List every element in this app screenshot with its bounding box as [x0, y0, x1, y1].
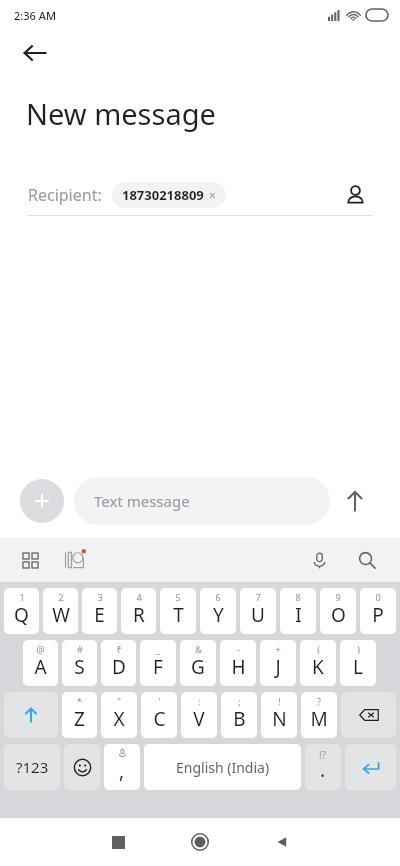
button[interactable]: - — [220, 640, 256, 686]
staticText: I — [295, 602, 302, 628]
staticText: M — [310, 706, 328, 732]
button[interactable]: ? — [301, 692, 337, 738]
staticText: ₹ — [116, 643, 122, 655]
button[interactable]: ! — [261, 692, 297, 738]
button[interactable]: Enter — [345, 744, 396, 790]
button[interactable]: * — [62, 692, 97, 738]
staticText: × — [209, 187, 216, 203]
staticText: 8 — [295, 591, 301, 603]
staticText: X — [113, 706, 125, 732]
staticText: D — [112, 654, 126, 680]
button[interactable]: 4 — [121, 588, 156, 634]
button[interactable]: Send — [330, 476, 380, 526]
staticText: * — [77, 695, 82, 707]
button[interactable]: ?123 — [4, 744, 60, 790]
button[interactable]: Add attachment — [20, 479, 64, 523]
staticText: _ — [156, 643, 160, 655]
button[interactable]: !? — [305, 744, 341, 790]
button[interactable]: Menu — [14, 544, 46, 576]
button[interactable]: 6 — [200, 588, 236, 634]
staticText: V — [193, 706, 205, 732]
button[interactable]: # — [62, 640, 97, 686]
button[interactable]: @ — [23, 640, 58, 686]
button[interactable]: 5 — [160, 588, 196, 634]
button[interactable]: Search — [350, 543, 384, 577]
staticText: ! — [278, 695, 281, 707]
staticText: 9 — [335, 591, 341, 603]
button[interactable]: + — [260, 640, 296, 686]
staticText: 3 — [97, 591, 103, 603]
staticText: 18730218809 — [122, 186, 204, 204]
staticText: New message — [26, 94, 216, 133]
staticText: Recipient: — [28, 184, 102, 206]
staticText: & — [195, 643, 202, 655]
button[interactable]: : — [181, 692, 217, 738]
staticText: R — [133, 602, 145, 628]
staticText: ; — [238, 695, 241, 707]
button[interactable]: Back — [22, 30, 400, 76]
staticText: A — [34, 654, 47, 680]
staticText: @ — [36, 643, 45, 655]
staticText: C — [153, 706, 166, 732]
staticText: Q — [14, 602, 29, 628]
button[interactable]: Recents — [92, 818, 144, 866]
button[interactable]: _ — [140, 640, 176, 686]
staticText: 2:36 AM — [14, 8, 57, 23]
staticText: 2 — [58, 591, 64, 603]
button[interactable]: 0 — [360, 588, 396, 634]
button[interactable]: " — [101, 692, 137, 738]
staticText: S — [74, 654, 85, 680]
staticText: L — [353, 654, 363, 680]
button[interactable]: & — [180, 640, 216, 686]
staticText: , — [119, 758, 125, 784]
button[interactable]: Voice input — [302, 543, 336, 577]
button[interactable]: ⌄ — [104, 744, 140, 790]
staticText: ?123 — [16, 757, 49, 777]
button[interactable]: Home — [174, 818, 226, 866]
staticText: ? — [317, 695, 321, 707]
staticText: : — [198, 695, 201, 707]
button[interactable]: Backspace — [341, 692, 396, 738]
staticText: ' — [158, 695, 161, 707]
button[interactable]: ; — [221, 692, 257, 738]
staticText: 0 — [375, 591, 381, 603]
button[interactable]: 9 — [320, 588, 356, 634]
staticText: T — [173, 602, 184, 628]
staticText: N — [272, 706, 287, 732]
staticText: B — [233, 706, 246, 732]
staticText: W — [52, 602, 70, 628]
staticText: 5 — [175, 591, 181, 603]
staticText: F — [153, 654, 163, 680]
button[interactable]: 8 — [280, 588, 316, 634]
staticText: Y — [213, 602, 224, 628]
staticText: - — [237, 643, 240, 655]
staticText: 1 — [19, 591, 25, 603]
button[interactable]: ₹ — [101, 640, 136, 686]
button[interactable]: Stickers — [58, 543, 92, 577]
button[interactable]: Contacts — [338, 178, 372, 212]
button[interactable]: 18730218809 — [112, 182, 226, 208]
button[interactable]: Emoji — [64, 744, 100, 790]
staticText: E — [94, 602, 105, 628]
staticText: J — [275, 654, 281, 680]
staticText: " — [117, 695, 121, 707]
button[interactable]: Back — [256, 818, 308, 866]
staticText: !? — [319, 748, 327, 762]
button[interactable]: 7 — [240, 588, 276, 634]
staticText: Z — [74, 706, 85, 732]
button[interactable]: Shift — [4, 692, 58, 738]
button[interactable]: ' — [141, 692, 177, 738]
button[interactable]: 2 — [43, 588, 78, 634]
staticText: + — [275, 643, 281, 655]
button[interactable]: ( — [300, 640, 336, 686]
staticText: ( — [317, 643, 320, 655]
button[interactable]: 1 — [4, 588, 39, 634]
staticText: 6 — [215, 591, 221, 603]
staticText: K — [312, 654, 324, 680]
button[interactable]: English (India) — [144, 744, 301, 790]
button[interactable]: 3 — [82, 588, 117, 634]
button[interactable]: Text message — [74, 477, 330, 525]
button[interactable]: ) — [340, 640, 376, 686]
staticText: # — [77, 643, 83, 655]
